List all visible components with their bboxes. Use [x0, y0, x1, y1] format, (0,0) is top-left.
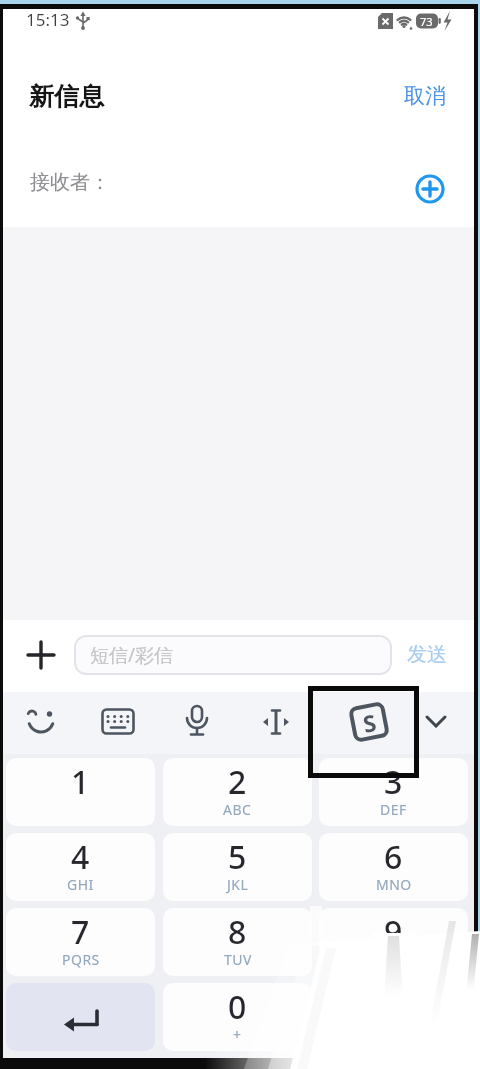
button[interactable] [414, 173, 446, 205]
staticText: 7 [71, 910, 90, 954]
button[interactable]: 2 [163, 758, 312, 826]
staticText: DEF [380, 800, 407, 819]
staticText: 0 [228, 985, 247, 1029]
staticText: 73 [420, 14, 433, 29]
button[interactable] [260, 706, 292, 738]
button[interactable]: 5 [163, 833, 312, 901]
button[interactable]: 9 [319, 908, 468, 976]
button[interactable]: 取消 [395, 76, 465, 116]
staticText: + [233, 1025, 242, 1044]
staticText: 4 [71, 835, 90, 879]
staticText: 3 [384, 760, 403, 804]
button[interactable] [422, 708, 450, 736]
button[interactable] [101, 708, 135, 736]
staticText: TUV [224, 950, 252, 969]
button[interactable] [6, 983, 155, 1051]
button[interactable]: 3 [319, 758, 468, 826]
button[interactable]: 4 [6, 833, 155, 901]
staticText: 短信/彩信 [90, 642, 174, 668]
staticText: GHI [67, 875, 94, 894]
button[interactable]: 发送 [400, 634, 464, 676]
button[interactable]: 8 [163, 908, 312, 976]
button[interactable] [181, 704, 213, 740]
staticText: 取消 [404, 83, 446, 109]
staticText: PQRS [62, 950, 100, 969]
staticText: 8 [228, 910, 247, 954]
button[interactable] [24, 638, 58, 672]
staticText: 1 [71, 760, 90, 804]
button[interactable]: 0 [163, 983, 312, 1051]
staticText: 5 [228, 835, 247, 879]
staticText: JKL [227, 875, 249, 894]
button[interactable]: 1 [6, 758, 155, 826]
staticText: S [360, 706, 379, 739]
staticText: 新信息 [29, 81, 104, 112]
staticText: 6 [384, 835, 403, 879]
staticText: ABC [223, 800, 252, 819]
button[interactable]: 短信/彩信 [74, 635, 392, 675]
staticText: 15:13 [26, 8, 70, 31]
staticText: 9 [384, 910, 403, 954]
button[interactable]: 7 [6, 908, 155, 976]
staticText: 2 [228, 760, 247, 804]
button[interactable] [24, 705, 58, 739]
button[interactable]: 6 [319, 833, 468, 901]
staticText: 接收者： [30, 170, 110, 195]
staticText: MNO [376, 875, 412, 894]
staticText: 发送 [407, 642, 447, 667]
button[interactable]: S [348, 701, 390, 743]
